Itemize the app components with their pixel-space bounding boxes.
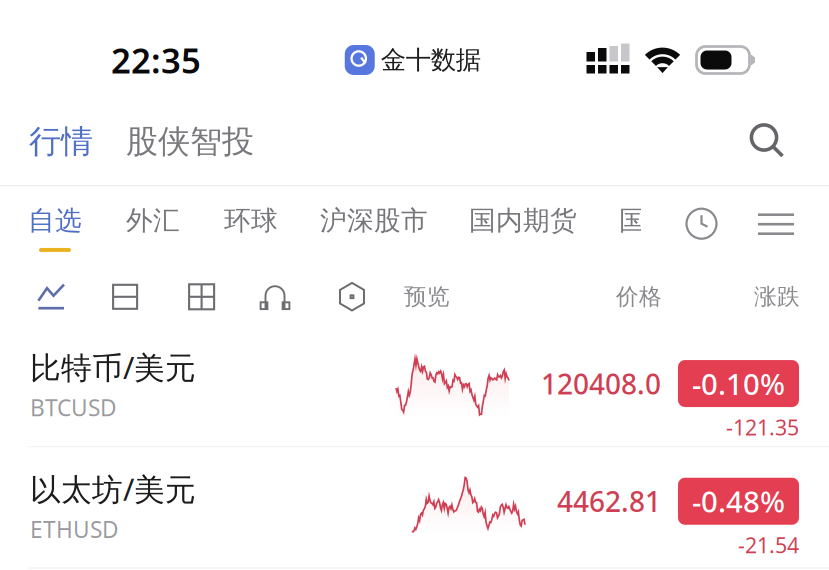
- button[interactable]: Chart view: [37, 283, 66, 310]
- staticText: -0.10%: [692, 364, 785, 403]
- button[interactable]: All markets: [758, 213, 794, 235]
- staticText: 120408.0: [541, 365, 661, 402]
- staticText: 比特币/美元: [30, 347, 196, 387]
- staticText: 22:35: [111, 37, 201, 83]
- button[interactable]: Search: [750, 123, 786, 159]
- staticText: 沪深股市: [320, 204, 428, 237]
- staticText: 金十数据: [381, 44, 481, 75]
- staticText: 股侠智投: [126, 122, 254, 161]
- staticText: 外汇: [126, 204, 180, 237]
- button[interactable]: 自选: [28, 204, 82, 252]
- button[interactable]: 沪深股市: [320, 204, 428, 252]
- button[interactable]: 行情: [29, 122, 93, 161]
- staticText: 4462.81: [557, 483, 661, 520]
- button[interactable]: Two-row layout: [112, 284, 138, 310]
- staticText: ETHUSD: [30, 514, 119, 544]
- staticText: 环球: [224, 204, 278, 237]
- staticText: -21.54: [738, 531, 799, 559]
- staticText: 预览: [404, 283, 450, 311]
- staticText: -121.35: [726, 413, 799, 441]
- staticText: 国: [619, 204, 646, 237]
- button[interactable]: 比特币/美元: [0, 333, 829, 446]
- button[interactable]: 国: [619, 204, 641, 237]
- button[interactable]: Grid layout: [188, 283, 215, 310]
- button[interactable]: More views: [337, 282, 367, 312]
- staticText: 行情: [29, 122, 93, 161]
- button[interactable]: Recent: [685, 207, 718, 240]
- staticText: 涨跌: [754, 283, 800, 311]
- button[interactable]: 环球: [224, 204, 278, 252]
- staticText: -0.48%: [692, 482, 785, 521]
- button[interactable]: 股侠智投: [126, 122, 254, 161]
- staticText: 国内期货: [469, 204, 577, 237]
- button[interactable]: Range view: [259, 283, 291, 311]
- button[interactable]: 国内期货: [469, 204, 577, 252]
- staticText: BTCUSD: [30, 392, 117, 423]
- staticText: 自选: [28, 204, 82, 237]
- staticText: 以太坊/美元: [30, 468, 196, 509]
- staticText: 价格: [616, 283, 662, 311]
- button[interactable]: 以太坊/美元: [0, 447, 829, 567]
- button[interactable]: 外汇: [126, 204, 180, 252]
